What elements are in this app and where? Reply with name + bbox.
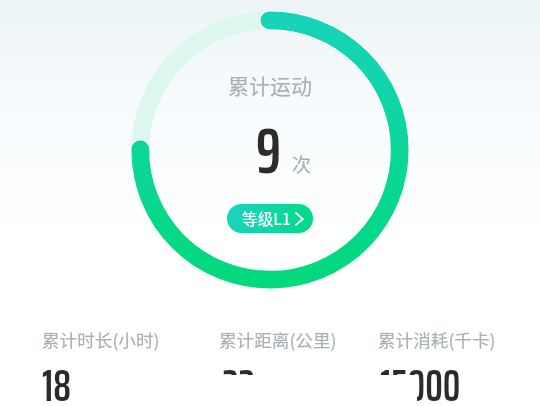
staticText: 22: [222, 351, 255, 406]
staticText: 18: [42, 351, 71, 406]
button[interactable]: 等级L1: [227, 204, 313, 233]
staticText: 累计时长(小时): [42, 327, 160, 352]
staticText: 累计距离(公里): [219, 327, 337, 352]
other: Level details: [295, 211, 305, 227]
staticText: 累计运动: [228, 70, 312, 100]
staticText: 9: [256, 100, 282, 201]
staticText: 次: [292, 150, 312, 178]
staticText: 15000: [380, 351, 461, 406]
staticText: 等级L1: [242, 207, 291, 230]
staticText: 累计消耗(千卡): [378, 327, 496, 352]
